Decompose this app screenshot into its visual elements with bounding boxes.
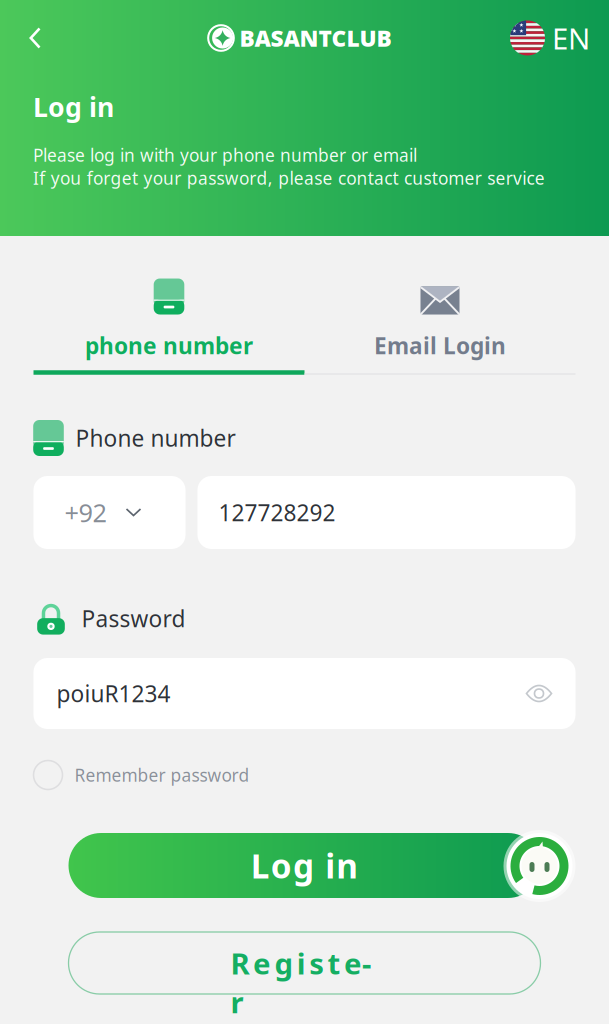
staticText: 127728292 [218,497,335,527]
button[interactable]: Language English [489,12,609,64]
button[interactable]: Country code +92 [33,476,185,549]
staticText: Log in [251,843,358,888]
button[interactable]: poiuR1234 [33,658,575,729]
staticText: poiuR1234 [56,678,170,708]
button[interactable]: Email Login [304,213,575,402]
staticText: +92 [64,496,106,529]
staticText: If you forget your password, please cont… [33,166,545,189]
staticText: EN [552,18,590,57]
staticText: Log in [33,89,114,124]
staticText: Password [81,603,185,633]
staticText: Email Login [374,330,506,360]
staticText: Phone number [75,423,235,453]
staticText: Remember password [74,763,249,786]
staticText: Please log in with your phone number or … [33,143,417,166]
staticText: phone number [85,330,253,360]
button[interactable]: Remember password [33,729,575,790]
button[interactable]: Log in [68,833,540,898]
button[interactable]: Customer support [503,830,575,902]
staticText: Register [231,943,378,982]
button[interactable]: Register [68,932,540,994]
button[interactable]: 127728292 [197,476,575,549]
staticText: ★ ★ ★ ★ [512,22,524,34]
staticText: BASANTCLUB [239,23,391,53]
button[interactable]: phone number [33,213,304,402]
button[interactable]: Back [0,12,110,64]
